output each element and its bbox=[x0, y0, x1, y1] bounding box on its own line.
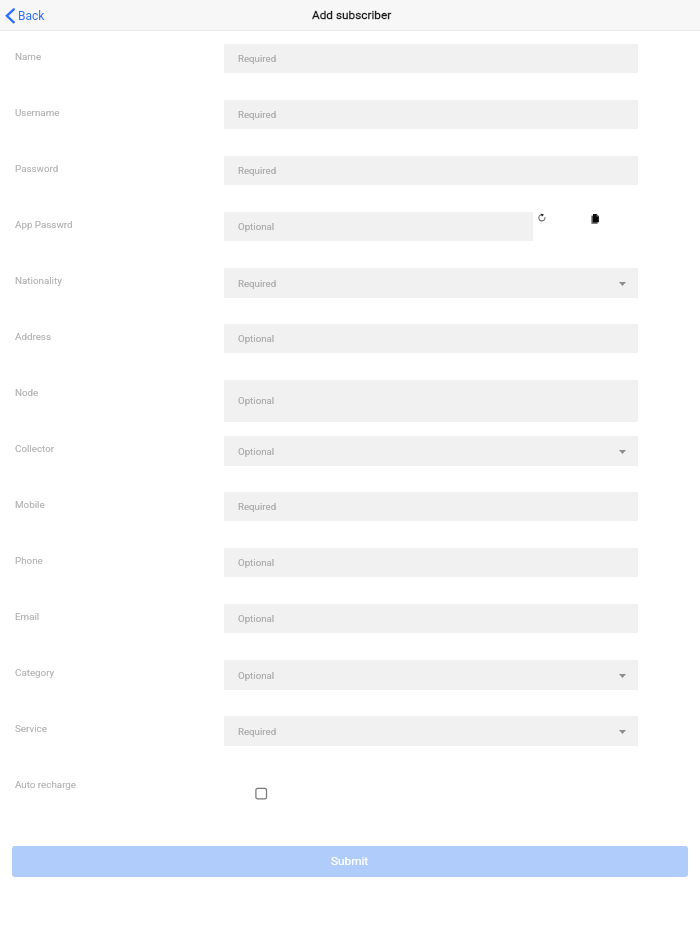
staticText: Category bbox=[15, 667, 55, 678]
staticText: Optional bbox=[238, 446, 275, 457]
staticText: Email bbox=[15, 611, 40, 622]
staticText: Optional bbox=[238, 670, 275, 681]
button[interactable]: Required bbox=[224, 156, 638, 185]
staticText: Required bbox=[238, 109, 277, 120]
staticText: Mobile bbox=[15, 499, 45, 510]
staticText: Back bbox=[18, 9, 45, 23]
button[interactable]: Required bbox=[224, 100, 638, 129]
button[interactable]: Submit bbox=[12, 846, 688, 877]
staticText: Username bbox=[15, 107, 60, 118]
staticText: Required bbox=[238, 278, 277, 289]
button[interactable]: Required bbox=[224, 268, 638, 298]
staticText: Node bbox=[15, 387, 39, 398]
staticText: Phone bbox=[15, 555, 43, 566]
staticText: Required bbox=[238, 726, 277, 737]
staticText: Optional bbox=[238, 333, 275, 344]
button[interactable]: Required bbox=[224, 492, 638, 521]
staticText: Optional bbox=[238, 395, 275, 406]
button[interactable]: Optional bbox=[224, 380, 638, 422]
staticText: Address bbox=[15, 331, 51, 342]
staticText: Required bbox=[238, 53, 277, 64]
button[interactable]: Required bbox=[224, 716, 638, 746]
staticText: Submit bbox=[331, 854, 369, 868]
staticText: Required bbox=[238, 501, 277, 512]
staticText: Optional bbox=[238, 613, 275, 624]
staticText: Optional bbox=[238, 221, 275, 232]
staticText: Add subscriber bbox=[312, 8, 392, 22]
staticText: App Passwrd bbox=[15, 219, 73, 230]
staticText: Name bbox=[15, 51, 42, 62]
button[interactable]: Back bbox=[0, 0, 52, 30]
button[interactable]: Optional bbox=[224, 660, 638, 690]
staticText: Service bbox=[15, 723, 47, 734]
staticText: Nationality bbox=[15, 275, 62, 286]
button[interactable]: Generate password bbox=[534, 210, 550, 226]
button[interactable]: Copy password bbox=[588, 209, 604, 225]
staticText: Collector bbox=[15, 443, 55, 454]
staticText: Auto recharge bbox=[15, 779, 77, 790]
button[interactable]: Auto recharge bbox=[249, 781, 273, 805]
button[interactable]: Optional bbox=[224, 548, 638, 577]
staticText: Required bbox=[238, 165, 277, 176]
staticText: Password bbox=[15, 163, 59, 174]
button[interactable]: Required bbox=[224, 44, 638, 73]
button[interactable]: Optional bbox=[224, 436, 638, 466]
button[interactable]: Optional bbox=[224, 604, 638, 633]
button[interactable]: Optional bbox=[224, 212, 533, 241]
staticText: Optional bbox=[238, 557, 275, 568]
button[interactable]: Optional bbox=[224, 324, 638, 353]
